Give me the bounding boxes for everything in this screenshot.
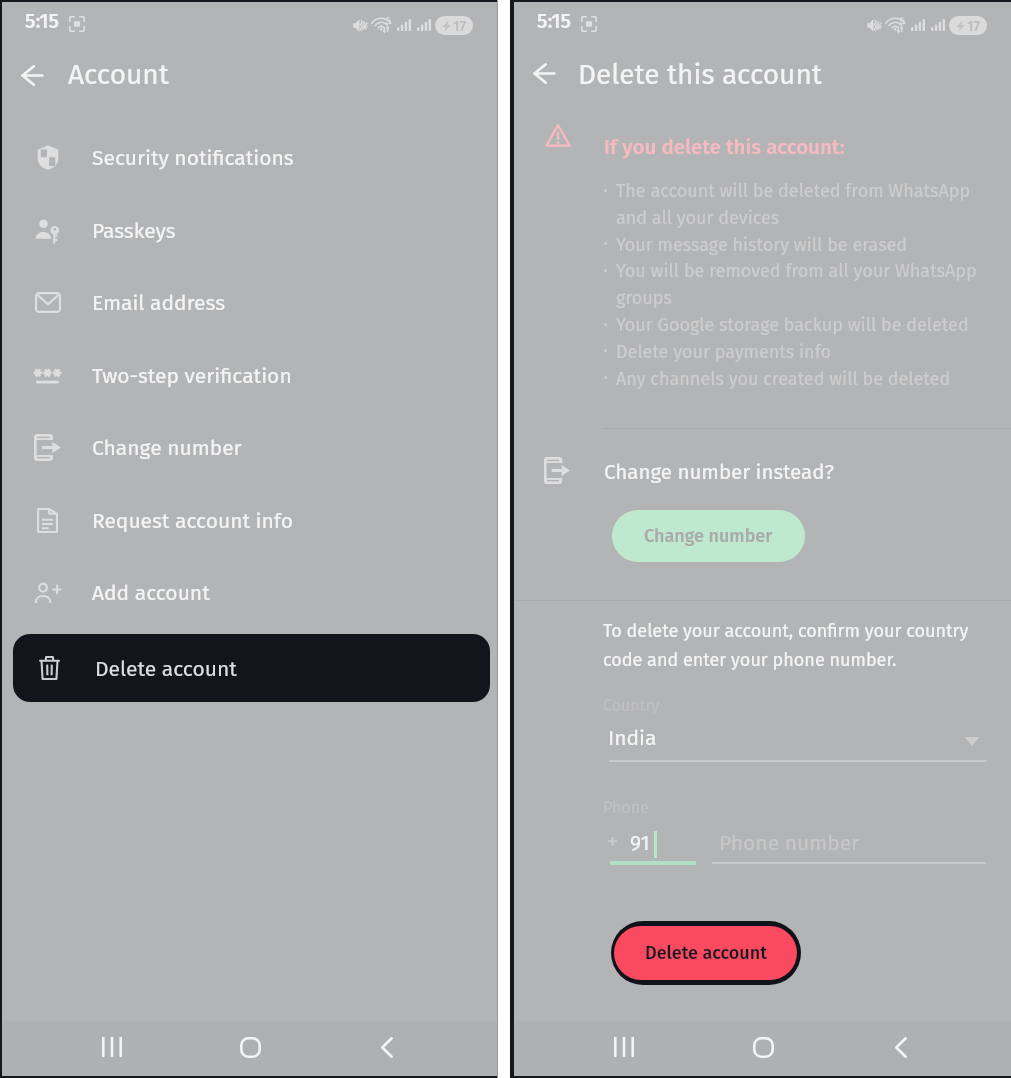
- button[interactable]: Back: [9, 53, 54, 97]
- staticText: Delete account: [645, 942, 767, 964]
- staticText: Phone: [603, 798, 649, 817]
- staticText: Your Google storage backup will be delet…: [616, 314, 969, 336]
- staticText: 5:15: [537, 9, 571, 33]
- staticText: Delete account: [95, 656, 237, 681]
- staticText: and all your devices: [616, 207, 780, 229]
- staticText: 91: [630, 830, 650, 855]
- staticText: Add account: [92, 580, 210, 605]
- staticText: Phone number: [719, 830, 860, 855]
- staticText: Email address: [92, 290, 225, 315]
- staticText: groups: [616, 287, 672, 309]
- button[interactable]: Back: [521, 51, 566, 95]
- staticText: Your message history will be erased: [616, 234, 908, 256]
- button[interactable]: Email address: [2, 266, 498, 338]
- button[interactable]: Back: [878, 1024, 924, 1070]
- staticText: Account: [68, 58, 169, 92]
- staticText: Change number: [644, 525, 773, 547]
- button[interactable]: Request account info: [2, 484, 498, 556]
- staticText: Delete your payments info: [616, 341, 832, 363]
- button[interactable]: Security notifications: [2, 121, 498, 193]
- staticText: Security notifications: [92, 145, 294, 170]
- staticText: 17: [967, 17, 981, 34]
- staticText: Request account info: [92, 508, 293, 533]
- button[interactable]: Two-step verification: [2, 339, 498, 411]
- staticText: Change number: [92, 435, 242, 460]
- button[interactable]: Home: [740, 1024, 786, 1070]
- staticText: Any channels you created will be deleted: [616, 368, 951, 390]
- staticText: If you delete this account:: [604, 135, 845, 160]
- staticText: Two-step verification: [92, 363, 292, 388]
- button[interactable]: Change number: [2, 411, 498, 483]
- button[interactable]: Home: [227, 1024, 273, 1070]
- staticText: The account will be deleted from WhatsAp…: [616, 180, 971, 202]
- button[interactable]: Passkeys: [2, 194, 498, 266]
- staticText: Passkeys: [92, 218, 176, 243]
- staticText: Country: [603, 696, 660, 715]
- staticText: 5:15: [25, 9, 59, 33]
- button[interactable]: Add account: [2, 556, 498, 628]
- staticText: To delete your account, confirm your cou…: [603, 620, 969, 671]
- staticText: You will be removed from all your WhatsA…: [616, 260, 977, 282]
- button[interactable]: Back: [364, 1024, 410, 1070]
- button[interactable]: Recents: [601, 1024, 647, 1070]
- button[interactable]: Delete account: [13, 634, 490, 702]
- staticText: 17: [453, 17, 467, 34]
- staticText: Change number instead?: [604, 460, 834, 485]
- staticText: India: [608, 725, 657, 750]
- button[interactable]: Change number: [612, 510, 805, 562]
- button[interactable]: Recents: [89, 1024, 135, 1070]
- staticText: +: [607, 828, 618, 854]
- staticText: Delete this account: [578, 58, 822, 92]
- button[interactable]: Delete account: [614, 926, 797, 980]
